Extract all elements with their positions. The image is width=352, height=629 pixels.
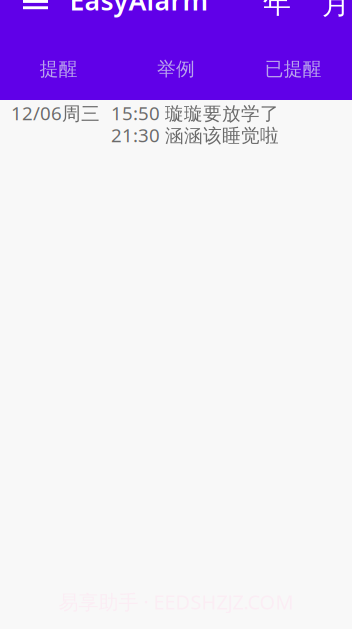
staticText: 15:50 璇璇要放学了	[111, 100, 279, 125]
staticText: 年	[263, 0, 291, 20]
button[interactable]: Year view	[255, 0, 299, 26]
staticText: 月	[322, 0, 350, 21]
staticText: 提醒	[40, 57, 78, 80]
button[interactable]: 已提醒	[235, 47, 352, 91]
button[interactable]: 提醒	[0, 47, 117, 91]
button[interactable]: 12/06周三	[0, 100, 352, 147]
staticText: 易享助手 · EEDSHZJZ.COM	[58, 588, 293, 615]
staticText: 12/06周三	[11, 100, 100, 125]
staticText: 21:30 涵涵该睡觉啦	[111, 123, 279, 147]
staticText: 举例	[157, 57, 195, 80]
button[interactable]: 举例	[117, 47, 235, 91]
button[interactable]: Menu	[15, 0, 56, 17]
button[interactable]: Month view	[314, 0, 352, 27]
staticText: EasyAlarm	[69, 0, 208, 18]
staticText: 已提醒	[265, 57, 322, 80]
